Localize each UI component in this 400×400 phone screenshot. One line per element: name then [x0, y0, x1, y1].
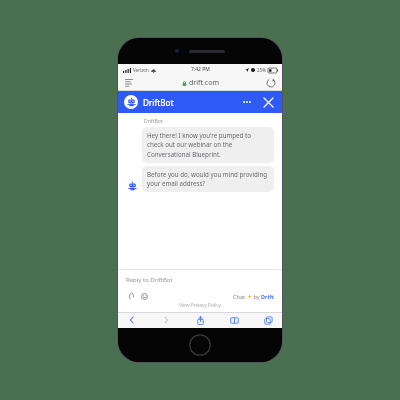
- button[interactable]: Attach file: [126, 291, 136, 301]
- button[interactable]: Chat: [233, 293, 274, 300]
- button[interactable]: drift.com: [182, 78, 219, 88]
- staticText: 25%: [257, 67, 266, 73]
- staticText: Drift: [261, 293, 274, 300]
- staticText: 7:42 PM: [191, 66, 210, 73]
- staticText: DriftBot: [143, 97, 174, 108]
- button[interactable]: Emoji: [139, 291, 149, 301]
- button[interactable]: Reply to DriftBot: [126, 276, 173, 284]
- staticText: Before you do, would you mind providing …: [147, 170, 269, 188]
- button[interactable]: Close chat: [260, 94, 276, 110]
- button[interactable]: Page settings: [123, 77, 135, 89]
- staticText: Verizon: [133, 67, 149, 73]
- staticText: by: [252, 293, 261, 300]
- button[interactable]: Forward: [158, 312, 174, 328]
- button[interactable]: More options: [239, 94, 255, 110]
- staticText: Chat: [233, 293, 247, 300]
- staticText: drift.com: [189, 78, 219, 88]
- staticText: DriftBot: [144, 118, 163, 125]
- button[interactable]: Back: [124, 312, 140, 328]
- button[interactable]: Hey there! I know you're pumped to check…: [147, 131, 269, 159]
- button[interactable]: Reload: [265, 77, 277, 89]
- staticText: Hey there! I know you're pumped to check…: [147, 131, 269, 159]
- button[interactable]: Bookmarks: [226, 312, 242, 328]
- button[interactable]: Before you do, would you mind providing …: [147, 170, 269, 188]
- button[interactable]: Tabs: [260, 312, 276, 328]
- button[interactable]: View Privacy Policy: [118, 302, 282, 309]
- button[interactable]: Share: [192, 312, 208, 328]
